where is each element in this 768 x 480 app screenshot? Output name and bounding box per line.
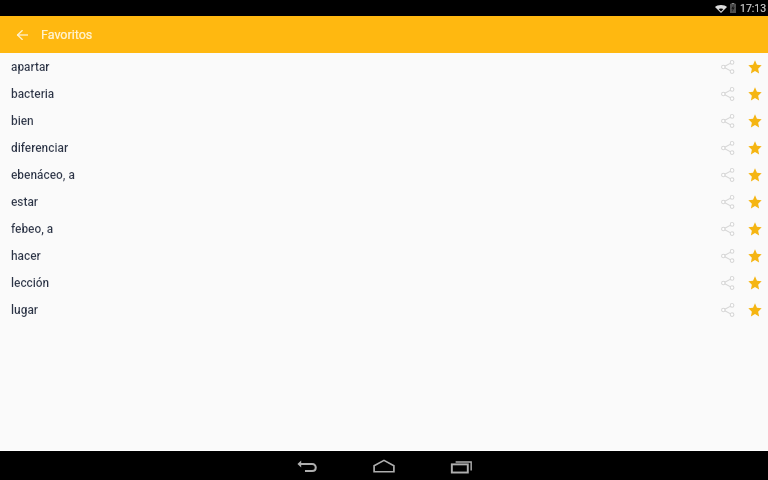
button[interactable]: Share bacteria <box>714 80 741 107</box>
button[interactable]: Share diferenciar <box>714 134 741 161</box>
button[interactable]: estar <box>0 188 768 215</box>
button[interactable]: bien <box>0 107 768 134</box>
button[interactable]: Remove diferenciar from favourites <box>741 134 768 161</box>
button[interactable]: Recent apps <box>436 451 486 480</box>
staticText: lección <box>11 276 50 290</box>
staticText: Favoritos <box>41 27 93 42</box>
staticText: apartar <box>11 60 50 74</box>
button[interactable]: Remove apartar from favourites <box>741 53 768 80</box>
button[interactable]: bacteria <box>0 80 768 107</box>
button[interactable]: ebenáceo, a <box>0 161 768 188</box>
button[interactable]: Navigate up <box>5 16 39 53</box>
staticText: bien <box>11 114 34 128</box>
staticText: hacer <box>11 249 41 263</box>
staticText: diferenciar <box>11 141 69 155</box>
button[interactable]: Home <box>359 451 409 480</box>
button[interactable]: Share estar <box>714 188 741 215</box>
staticText: bacteria <box>11 87 55 101</box>
button[interactable]: apartar <box>0 53 768 80</box>
staticText: ebenáceo, a <box>11 168 75 182</box>
button[interactable]: Remove bien from favourites <box>741 107 768 134</box>
button[interactable]: Back <box>282 451 332 480</box>
staticText: febeo, a <box>11 222 54 236</box>
staticText: 17:13 <box>740 2 767 14</box>
button[interactable]: Share apartar <box>714 53 741 80</box>
button[interactable]: Remove hacer from favourites <box>741 242 768 269</box>
button[interactable]: Share lección <box>714 269 741 296</box>
button[interactable]: Share ebenáceo, a <box>714 161 741 188</box>
button[interactable]: lugar <box>0 296 768 323</box>
staticText: lugar <box>11 303 38 317</box>
button[interactable]: Remove lección from favourites <box>741 269 768 296</box>
button[interactable]: febeo, a <box>0 215 768 242</box>
staticText: estar <box>11 195 39 209</box>
button[interactable]: Remove ebenáceo, a from favourites <box>741 161 768 188</box>
button[interactable]: Share febeo, a <box>714 215 741 242</box>
button[interactable]: Remove febeo, a from favourites <box>741 215 768 242</box>
button[interactable]: Remove bacteria from favourites <box>741 80 768 107</box>
button[interactable]: Remove estar from favourites <box>741 188 768 215</box>
button[interactable]: Share lugar <box>714 296 741 323</box>
button[interactable]: hacer <box>0 242 768 269</box>
button[interactable]: Share hacer <box>714 242 741 269</box>
button[interactable]: lección <box>0 269 768 296</box>
button[interactable]: Share bien <box>714 107 741 134</box>
button[interactable]: Remove lugar from favourites <box>741 296 768 323</box>
button[interactable]: diferenciar <box>0 134 768 161</box>
